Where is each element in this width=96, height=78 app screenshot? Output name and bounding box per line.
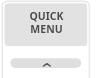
button[interactable]: QUICK MENU — [5, 3, 88, 46]
staticText: QUICK MENU — [29, 9, 64, 36]
button[interactable]: Collapse quick menu — [10, 58, 81, 68]
